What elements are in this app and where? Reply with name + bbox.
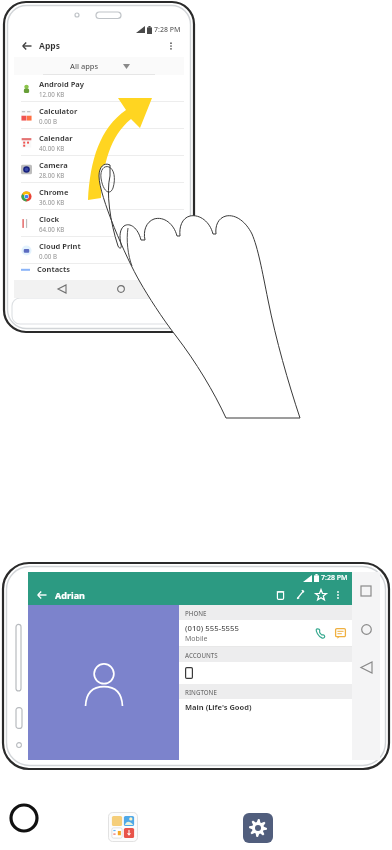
button[interactable]: Contacts [14, 264, 184, 275]
staticText: 64.00 KB [39, 225, 65, 233]
staticText: 36.00 KB [39, 198, 65, 206]
staticText: Apps [39, 40, 60, 52]
button[interactable]: Back [20, 39, 34, 53]
staticText: RINGTONE [185, 688, 217, 696]
button[interactable]: Apps [106, 810, 140, 844]
button[interactable]: Main (Life's Good) [179, 699, 352, 715]
staticText: Calendar [39, 133, 73, 143]
button[interactable]: Chrome [14, 183, 184, 209]
button[interactable]: Recent apps [357, 582, 375, 600]
staticText: (010) 555-5555 [185, 623, 239, 634]
button[interactable]: Calendar [14, 129, 184, 155]
button[interactable]: Home [113, 281, 129, 297]
staticText: 0.00 B [39, 117, 57, 125]
button[interactable]: Clock [14, 210, 184, 236]
button[interactable]: Calculator [14, 102, 184, 128]
button[interactable] [179, 662, 352, 684]
staticText: 40.00 KB [39, 144, 65, 152]
button[interactable]: Message [332, 625, 348, 641]
button[interactable]: (010) 555-5555 [179, 620, 352, 646]
button[interactable]: Cloud Print [14, 237, 184, 263]
button[interactable]: Camera [14, 156, 184, 182]
button[interactable]: More options [331, 588, 345, 602]
button[interactable]: Back [54, 281, 70, 297]
button[interactable]: Back [357, 658, 375, 676]
button[interactable]: All apps [14, 57, 184, 75]
staticText: Adrian [55, 589, 85, 601]
button[interactable]: More options [164, 39, 178, 53]
staticText: 28.00 KB [39, 171, 65, 179]
staticText: Contacts [37, 264, 71, 274]
staticText: Android Pay [39, 79, 85, 89]
button[interactable]: Android Pay [14, 75, 184, 101]
button[interactable]: Delete [272, 586, 289, 603]
staticText: ACCOUNTS [185, 651, 218, 659]
button[interactable]: Favorite [312, 586, 329, 603]
staticText: Mobile [185, 634, 208, 644]
staticText: Chrome [39, 187, 69, 197]
button[interactable]: Edit [292, 586, 309, 603]
staticText: Clock [39, 214, 60, 224]
button[interactable]: Home [357, 620, 375, 638]
button[interactable]: Back [35, 588, 49, 602]
staticText: Calculator [39, 106, 78, 116]
staticText: 7:28 PM [321, 573, 348, 583]
staticText: Main (Life's Good) [185, 702, 252, 712]
button[interactable]: Home [2, 796, 46, 840]
button[interactable]: Settings [242, 812, 274, 844]
staticText: Camera [39, 160, 68, 170]
staticText: 7:28 PM [154, 25, 181, 35]
staticText: Cloud Print [39, 241, 81, 251]
staticText: 12.00 KB [39, 90, 65, 98]
staticText: All apps [70, 61, 99, 71]
staticText: 0.00 B [39, 252, 57, 260]
staticText: PHONE [185, 609, 207, 617]
button[interactable]: Call [312, 625, 328, 641]
